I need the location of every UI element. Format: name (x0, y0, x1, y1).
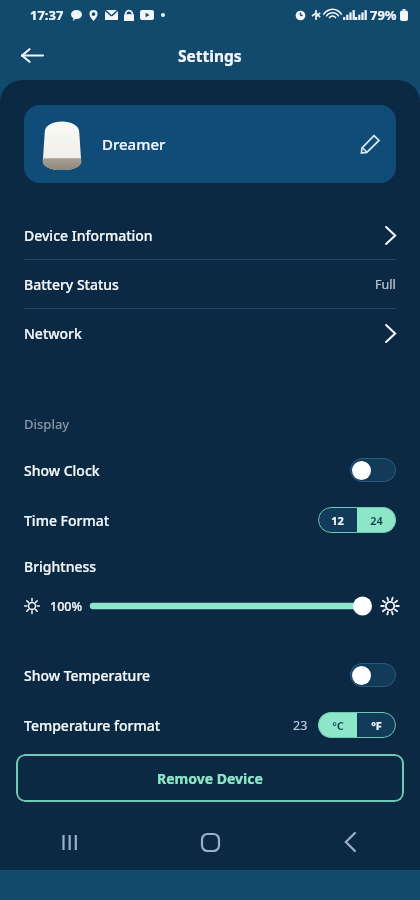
staticText: Show Temperature (24, 666, 151, 685)
staticText: 79% (370, 6, 397, 24)
staticText: Full (375, 276, 396, 293)
staticText: °C (332, 718, 344, 733)
staticText: Show Clock (24, 461, 100, 480)
staticText: Remove Device (157, 769, 263, 788)
staticText: Settings (178, 45, 242, 66)
button[interactable]: Rename device (348, 122, 392, 166)
button[interactable]: Battery Status (0, 260, 420, 308)
button[interactable]: Network (0, 309, 420, 357)
button[interactable]: Back (324, 820, 376, 864)
staticText: Display (24, 415, 70, 433)
button[interactable]: Show Temperature (0, 658, 420, 692)
staticText: °F (371, 718, 382, 733)
button[interactable]: 24 (357, 507, 396, 533)
button[interactable]: °F (357, 712, 396, 738)
staticText: Device Information (24, 226, 153, 245)
button[interactable]: Remove Device (16, 754, 404, 802)
staticText: Temperature format (24, 716, 161, 735)
staticText: Time Format (24, 511, 110, 530)
button[interactable]: Device Information (0, 211, 420, 259)
staticText: 100% (50, 598, 83, 615)
button[interactable]: Back (12, 35, 52, 75)
button[interactable]: Show Clock (0, 453, 420, 487)
button[interactable]: Dreamer (24, 105, 396, 183)
staticText: Dreamer (102, 134, 166, 154)
staticText: Battery Status (24, 275, 119, 294)
staticText: 17:37 (30, 6, 64, 24)
button[interactable]: 12 (318, 507, 357, 533)
button[interactable]: Home (184, 820, 236, 864)
staticText: Brightness (24, 557, 97, 576)
staticText: Network (24, 324, 82, 343)
staticText: 24 (370, 513, 383, 528)
staticText: 12 (331, 513, 344, 528)
button[interactable]: °C (318, 712, 357, 738)
staticText: 23 (293, 717, 308, 734)
button[interactable]: Recent apps (44, 820, 96, 864)
